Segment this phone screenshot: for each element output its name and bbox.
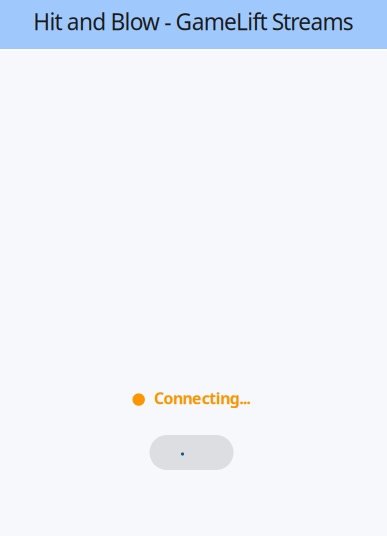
- button[interactable]: Start stream: [149, 435, 233, 470]
- staticText: Hit and Blow - GameLift Streams: [33, 6, 354, 36]
- staticText: Connecting...: [154, 387, 250, 409]
